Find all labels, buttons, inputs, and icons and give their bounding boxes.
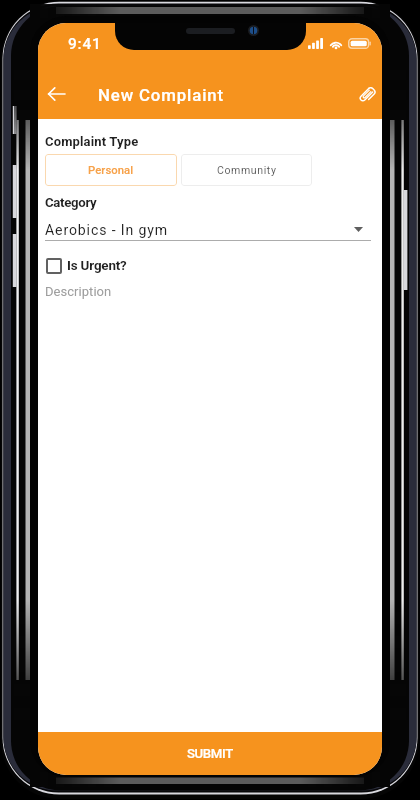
staticText: Is Urgent? [67, 258, 127, 274]
staticText: Personal [88, 164, 134, 177]
staticText: Community [217, 164, 277, 176]
button[interactable]: Community [181, 154, 312, 186]
staticText: Category [45, 195, 97, 210]
staticText: Aerobics - In gym [45, 222, 169, 239]
button[interactable]: Attach file [347, 75, 382, 113]
staticText: 9:41 [68, 35, 102, 53]
staticText: Complaint Type [45, 134, 139, 149]
staticText: New Complaint [98, 85, 224, 105]
button[interactable]: Back [38, 76, 74, 112]
button[interactable]: Personal [45, 154, 177, 186]
staticText: Description [45, 284, 112, 299]
button[interactable]: SUBMIT [38, 732, 382, 775]
button[interactable]: Aerobics - In gym [45, 217, 371, 241]
button[interactable]: Is Urgent? [46, 255, 127, 276]
staticText: SUBMIT [187, 746, 233, 761]
